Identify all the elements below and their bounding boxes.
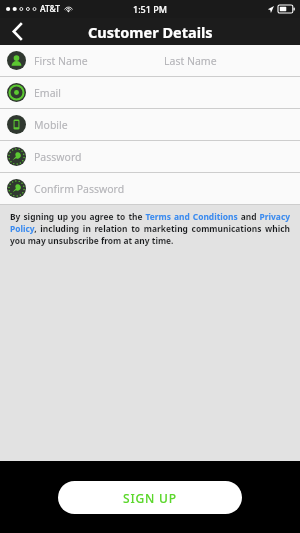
button[interactable]: SIGN UP [58, 481, 242, 514]
staticText: SIGN UP [123, 490, 177, 506]
button[interactable]: First Name [0, 45, 300, 76]
staticText: Email [34, 86, 61, 100]
staticText: First Name [34, 54, 88, 68]
staticText: Password [34, 150, 82, 164]
button[interactable]: Email [0, 77, 300, 108]
staticText: 1:51 PM [133, 3, 167, 15]
button[interactable]: Back [0, 18, 34, 45]
staticText: Customer Details [88, 22, 213, 42]
staticText: Confirm Password [34, 182, 125, 196]
button[interactable]: Mobile [0, 109, 300, 140]
staticText: AT&T [40, 3, 61, 15]
staticText: Mobile [34, 118, 68, 132]
button[interactable]: Password [0, 141, 300, 172]
staticText: By signing up you agree to the Terms and… [10, 211, 290, 247]
button[interactable]: By signing up you agree to the Terms and… [0, 205, 300, 253]
staticText: Last Name [164, 54, 217, 68]
button[interactable]: Confirm Password [0, 173, 300, 204]
